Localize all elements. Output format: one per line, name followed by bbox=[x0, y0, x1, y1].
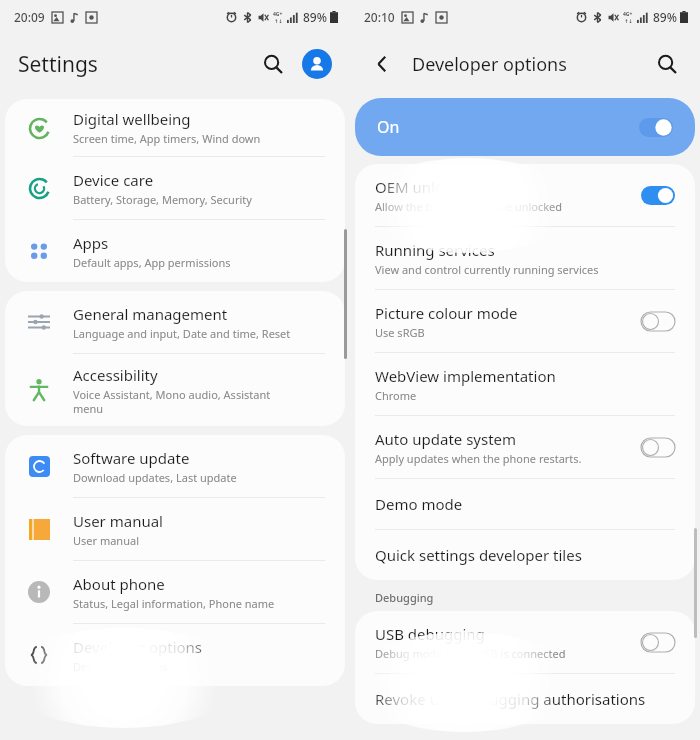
staticText: Developer options bbox=[73, 637, 203, 657]
button[interactable]: WebView implementation bbox=[355, 353, 695, 416]
staticText: Revoke USB debugging authorisations bbox=[375, 689, 646, 709]
staticText: WebView implementation bbox=[375, 366, 556, 386]
staticText: Digital wellbeing bbox=[73, 109, 191, 129]
button[interactable]: Device care bbox=[5, 157, 345, 220]
button[interactable] bbox=[641, 312, 675, 331]
button[interactable]: General management bbox=[5, 291, 345, 354]
button[interactable]: Running services bbox=[355, 227, 695, 290]
staticText: 20:09 bbox=[14, 9, 45, 25]
staticText: Download updates, Last update bbox=[73, 470, 237, 485]
button[interactable] bbox=[641, 633, 675, 652]
staticText: ↑↓ bbox=[624, 18, 633, 24]
staticText: About phone bbox=[73, 574, 165, 594]
button[interactable] bbox=[641, 438, 675, 457]
staticText: On bbox=[377, 116, 400, 138]
staticText: 4G+ bbox=[273, 11, 283, 18]
staticText: 20:10 bbox=[364, 9, 395, 25]
button[interactable]: Picture colour mode bbox=[355, 290, 695, 353]
staticText: Quick settings developer tiles bbox=[375, 545, 582, 565]
staticText: Picture colour mode bbox=[375, 303, 518, 323]
staticText: Screen time, App timers, Wind down bbox=[73, 131, 261, 146]
staticText: Debugging bbox=[375, 590, 434, 605]
button[interactable]: Search bbox=[256, 47, 290, 81]
button[interactable]: Account bbox=[302, 49, 332, 79]
staticText: Battery, Storage, Memory, Security bbox=[73, 192, 252, 207]
staticText: Running services bbox=[375, 240, 495, 260]
staticText: Language and input, Date and time, Reset bbox=[73, 326, 291, 341]
button[interactable]: Demo mode bbox=[355, 479, 695, 530]
staticText: Device care bbox=[73, 170, 154, 190]
staticText: Apps bbox=[73, 233, 109, 253]
staticText: Debug mode when USB is connected bbox=[375, 646, 566, 661]
staticText: Developer options bbox=[412, 52, 567, 77]
staticText: Chrome bbox=[375, 388, 417, 403]
staticText: OEM unlocking bbox=[375, 177, 482, 197]
staticText: Apply updates when the phone restarts. bbox=[375, 451, 582, 466]
staticText: USB debugging bbox=[375, 624, 485, 644]
staticText: 89% bbox=[653, 9, 677, 25]
button[interactable]: Revoke USB debugging authorisations bbox=[355, 674, 695, 724]
button[interactable] bbox=[641, 186, 675, 205]
button[interactable]: Search bbox=[650, 47, 684, 81]
staticText: Voice Assistant, Mono audio, Assistant m… bbox=[73, 387, 271, 416]
button[interactable]: Developer options bbox=[5, 624, 345, 686]
staticText: View and control currently running servi… bbox=[375, 262, 599, 277]
button[interactable]: Accessibility bbox=[5, 354, 345, 426]
button[interactable]: On bbox=[355, 98, 695, 156]
staticText: General management bbox=[73, 304, 228, 324]
staticText: Software update bbox=[73, 448, 190, 468]
button[interactable]: Apps bbox=[5, 220, 345, 282]
staticText: 89% bbox=[303, 9, 327, 25]
staticText: Demo mode bbox=[375, 494, 463, 514]
button[interactable]: Software update bbox=[5, 435, 345, 498]
staticText: Default apps, App permissions bbox=[73, 255, 231, 270]
button[interactable]: User manual bbox=[5, 498, 345, 561]
button[interactable]: Auto update system bbox=[355, 416, 695, 479]
staticText: ↑↓ bbox=[274, 18, 283, 24]
staticText: Allow the bootloader to be unlocked bbox=[375, 199, 563, 214]
staticText: Auto update system bbox=[375, 429, 517, 449]
staticText: Accessibility bbox=[73, 365, 158, 385]
button[interactable]: Back bbox=[366, 48, 398, 80]
staticText: Settings bbox=[18, 50, 98, 79]
button[interactable]: OEM unlocking bbox=[355, 164, 695, 227]
button[interactable]: Quick settings developer tiles bbox=[355, 530, 695, 580]
staticText: Use sRGB bbox=[375, 325, 425, 340]
staticText: 4G+ bbox=[623, 11, 633, 18]
button[interactable]: USB debugging bbox=[355, 611, 695, 674]
staticText: User manual bbox=[73, 533, 139, 548]
button[interactable]: About phone bbox=[5, 561, 345, 624]
staticText: Status, Legal information, Phone name bbox=[73, 596, 275, 611]
staticText: User manual bbox=[73, 511, 163, 531]
button[interactable]: Digital wellbeing bbox=[5, 99, 345, 157]
